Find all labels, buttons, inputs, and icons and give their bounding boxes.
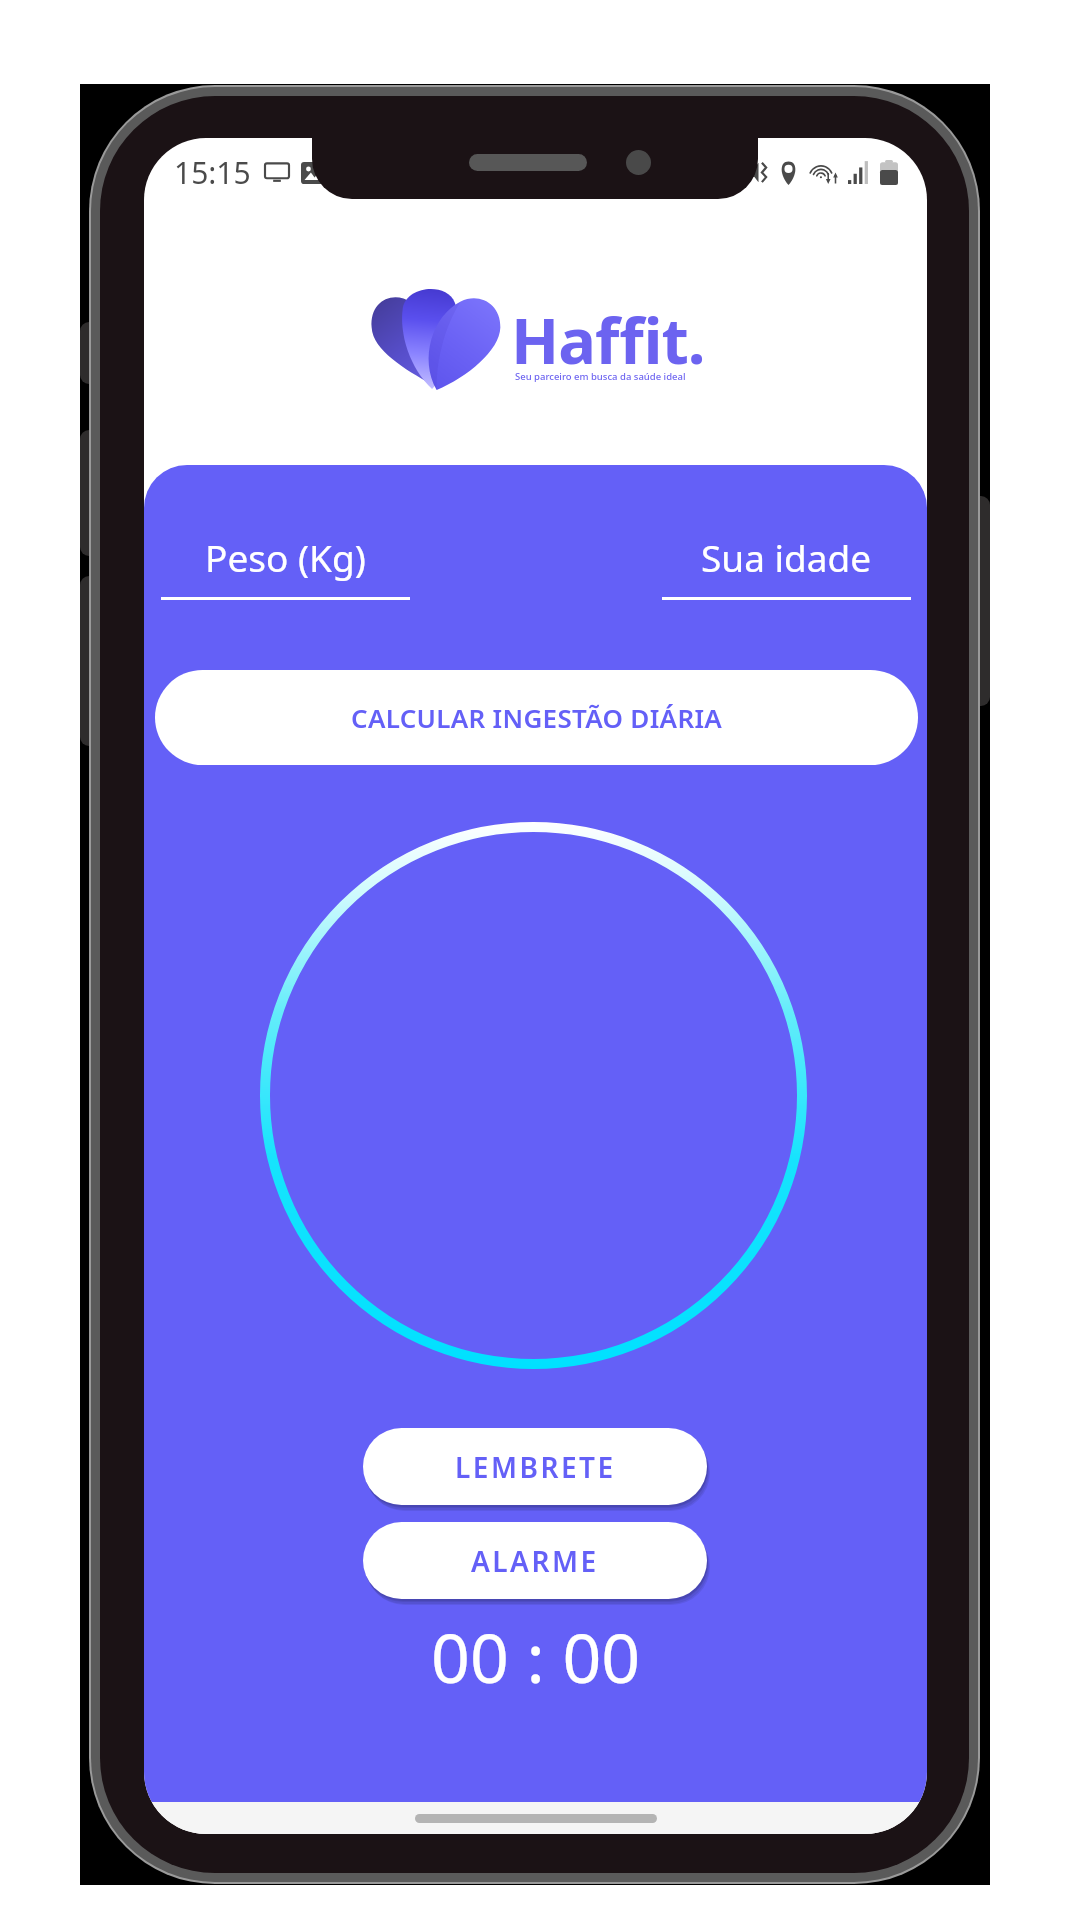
button[interactable]: ALARME xyxy=(363,1522,707,1599)
staticText: 00 : 00 xyxy=(431,1610,641,1703)
staticText: ALARME xyxy=(471,1542,599,1580)
button[interactable]: Sua idade xyxy=(662,531,911,600)
staticText: Haffit. xyxy=(511,297,705,383)
staticText: CALCULAR INGESTÃO DIÁRIA xyxy=(351,700,723,735)
button[interactable]: LEMBRETE xyxy=(363,1428,707,1505)
button[interactable]: CALCULAR INGESTÃO DIÁRIA xyxy=(155,670,918,765)
staticText: 15:15 xyxy=(174,152,251,193)
other: Progresso de ingestão diária xyxy=(260,822,807,1369)
button[interactable]: Peso (Kg) xyxy=(161,531,410,600)
staticText: Peso (Kg) xyxy=(205,532,366,582)
staticText: LEMBRETE xyxy=(455,1448,616,1486)
staticText: Seu parceiro em busca da saúde ideal xyxy=(515,370,686,383)
staticText: Sua idade xyxy=(701,532,872,582)
